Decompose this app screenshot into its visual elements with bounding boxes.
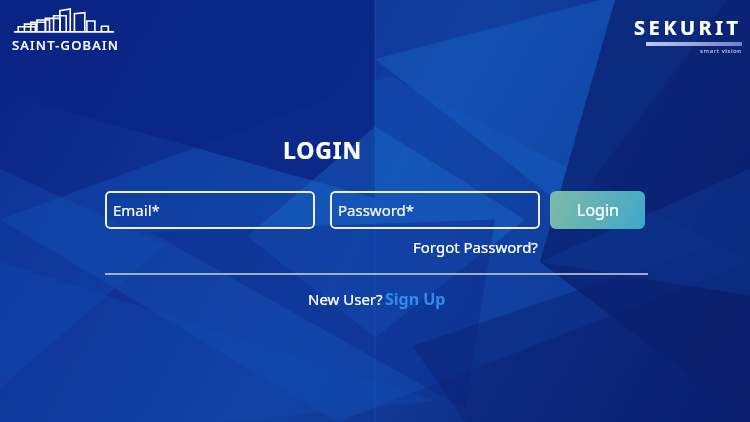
staticText: Forgot Password? [413,237,538,257]
staticText: Login [577,199,619,221]
staticText: SEKURIT [634,14,742,41]
staticText: SAINT-GOBAIN [12,36,120,54]
button[interactable]: Email* [105,191,315,229]
button[interactable]: Forgot Password? [411,235,540,259]
button[interactable]: Saint-Gobain logo [12,8,120,54]
other: Sekurit smart vision logo [634,14,742,55]
staticText: Password* [338,200,415,220]
staticText: Sign Up [385,288,446,310]
staticText: LOGIN [283,134,362,165]
button[interactable]: Login [550,191,645,229]
staticText: Email* [113,200,160,220]
staticText: New User? [308,289,383,309]
button[interactable]: Password* [330,191,540,229]
button[interactable]: Sign Up [383,288,446,310]
staticText: smart vision [700,47,742,55]
